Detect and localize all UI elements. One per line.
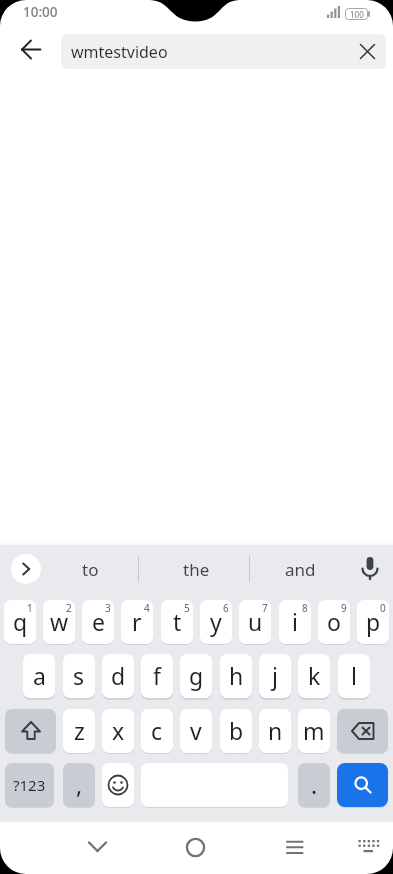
button[interactable]: [352, 831, 385, 864]
button[interactable]: q: [4, 600, 36, 644]
button[interactable]: m: [298, 709, 330, 753]
button[interactable]: [5, 709, 56, 753]
staticText: i: [292, 606, 298, 637]
staticText: w: [50, 606, 69, 637]
staticText: d: [111, 660, 126, 691]
staticText: ?123: [13, 775, 46, 795]
staticText: wmtestvideo: [71, 41, 168, 63]
staticText: n: [268, 715, 283, 746]
staticText: l: [351, 660, 357, 691]
staticText: u: [248, 606, 263, 637]
staticText: 2: [66, 601, 72, 615]
staticText: 4: [144, 601, 150, 615]
staticText: g: [189, 660, 204, 691]
staticText: j: [272, 660, 278, 691]
button[interactable]: c: [141, 709, 173, 753]
staticText: to: [82, 558, 99, 581]
button[interactable]: [102, 763, 134, 807]
staticText: the: [183, 558, 210, 581]
button[interactable]: [14, 34, 46, 66]
staticText: m: [303, 715, 325, 746]
staticText: f: [153, 660, 161, 691]
button[interactable]: s: [63, 654, 95, 698]
button[interactable]: to: [52, 552, 128, 586]
button[interactable]: [337, 763, 388, 807]
staticText: e: [92, 606, 105, 637]
button[interactable]: e: [82, 600, 114, 644]
staticText: y: [210, 606, 222, 637]
staticText: 0: [380, 601, 386, 615]
staticText: 8: [302, 601, 308, 615]
button[interactable]: z: [63, 709, 95, 753]
button[interactable]: wmtestvideo: [61, 34, 386, 69]
button[interactable]: a: [23, 654, 55, 698]
button[interactable]: f: [141, 654, 173, 698]
staticText: a: [33, 660, 46, 691]
button[interactable]: y: [200, 600, 232, 644]
staticText: 3: [105, 601, 111, 615]
staticText: z: [74, 715, 85, 746]
button[interactable]: the: [140, 552, 252, 586]
staticText: and: [285, 558, 316, 581]
staticText: p: [366, 606, 381, 637]
button[interactable]: t: [161, 600, 193, 644]
staticText: x: [112, 715, 125, 746]
staticText: 6: [223, 601, 229, 615]
staticText: b: [229, 715, 244, 746]
button[interactable]: [278, 831, 311, 864]
staticText: ,: [76, 769, 83, 800]
staticText: s: [73, 660, 85, 691]
button[interactable]: i: [279, 600, 311, 644]
staticText: q: [13, 606, 28, 637]
staticText: 5: [184, 601, 190, 615]
button[interactable]: g: [180, 654, 212, 698]
button[interactable]: d: [102, 654, 134, 698]
button[interactable]: ,: [63, 763, 95, 807]
button[interactable]: [359, 555, 381, 583]
button[interactable]: w: [43, 600, 75, 644]
button[interactable]: u: [239, 600, 271, 644]
button[interactable]: ?123: [5, 763, 54, 807]
staticText: v: [190, 715, 202, 746]
button[interactable]: r: [121, 600, 153, 644]
staticText: 7: [262, 601, 268, 615]
button[interactable]: [179, 831, 212, 864]
staticText: 1: [27, 601, 33, 615]
staticText: t: [173, 606, 182, 637]
staticText: 9: [341, 601, 347, 615]
button[interactable]: l: [338, 654, 370, 698]
button[interactable]: [81, 831, 114, 864]
button[interactable]: [337, 709, 388, 753]
button[interactable]: and: [252, 552, 348, 586]
button[interactable]: [11, 554, 41, 584]
button[interactable]: h: [220, 654, 252, 698]
button[interactable]: o: [318, 600, 350, 644]
staticText: c: [151, 715, 163, 746]
staticText: 100: [350, 9, 364, 20]
button[interactable]: p: [357, 600, 389, 644]
button[interactable]: v: [180, 709, 212, 753]
button[interactable]: n: [259, 709, 291, 753]
staticText: r: [132, 606, 142, 637]
staticText: o: [327, 606, 341, 637]
button[interactable]: [360, 44, 375, 59]
button[interactable]: .: [298, 763, 330, 807]
staticText: k: [308, 660, 321, 691]
button[interactable]: b: [220, 709, 252, 753]
staticText: 10:00: [23, 3, 58, 21]
button[interactable]: x: [102, 709, 134, 753]
button[interactable]: k: [298, 654, 330, 698]
staticText: h: [229, 660, 244, 691]
staticText: .: [311, 769, 318, 800]
button[interactable]: j: [259, 654, 291, 698]
